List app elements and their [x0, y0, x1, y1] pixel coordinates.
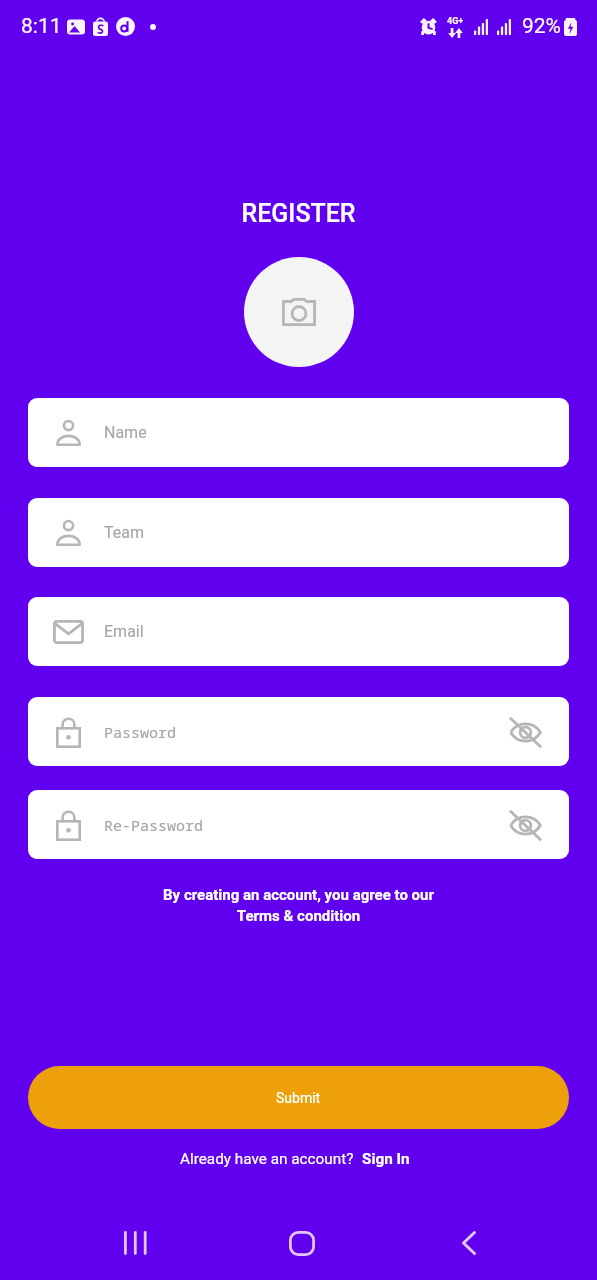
staticText: Submit	[276, 1090, 321, 1106]
button[interactable]: Re-Password	[28, 790, 569, 859]
staticText: Team	[104, 523, 144, 542]
staticText: Already have an account?	[180, 1150, 354, 1168]
staticText: By creating an account, you agree to our	[0, 886, 597, 904]
button[interactable]: Recent apps	[105, 1213, 165, 1273]
staticText: Name	[104, 423, 147, 442]
button[interactable]: Add profile photo	[244, 257, 354, 367]
staticText: Re-Password	[104, 815, 204, 835]
button[interactable]: Sign In	[362, 1150, 410, 1168]
button[interactable]: Show password	[505, 712, 545, 752]
button[interactable]: Password	[28, 697, 569, 766]
button[interactable]: Show password	[505, 805, 545, 845]
staticText: 8:11	[21, 14, 62, 39]
button[interactable]: Name	[28, 398, 569, 467]
button[interactable]: Team	[28, 498, 569, 567]
staticText: REGISTER	[0, 199, 597, 228]
staticText: 92%	[522, 14, 561, 39]
staticText: 4G+	[447, 16, 464, 27]
button[interactable]: Submit	[28, 1066, 569, 1129]
button[interactable]: Home	[272, 1213, 332, 1273]
staticText: Password	[104, 722, 177, 742]
button[interactable]: Email	[28, 597, 569, 666]
button[interactable]: Terms & condition	[0, 907, 597, 925]
button[interactable]: Back	[439, 1213, 499, 1273]
staticText: Email	[104, 622, 144, 641]
